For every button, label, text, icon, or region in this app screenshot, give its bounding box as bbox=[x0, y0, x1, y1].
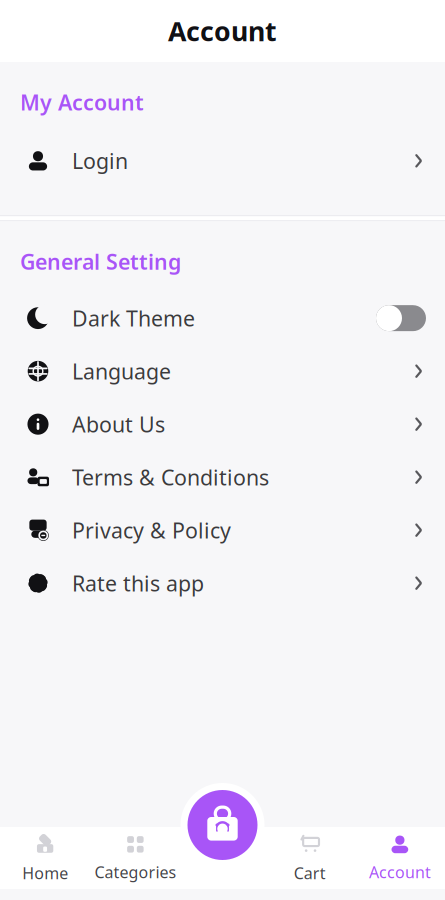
button[interactable]: Dark Theme bbox=[0, 292, 445, 345]
staticText: Account bbox=[369, 861, 431, 883]
staticText: Rate this app bbox=[72, 569, 204, 597]
button[interactable]: About Us bbox=[0, 398, 445, 451]
button[interactable]: Account bbox=[355, 827, 445, 889]
staticText: Terms & Conditions bbox=[72, 463, 269, 491]
staticText: Dark Theme bbox=[72, 304, 195, 332]
button[interactable]: Login bbox=[0, 134, 445, 187]
button[interactable]: Language bbox=[0, 345, 445, 398]
button[interactable]: Terms & Conditions bbox=[0, 451, 445, 504]
staticText: Login bbox=[72, 147, 128, 175]
staticText: Home bbox=[22, 862, 68, 884]
staticText: About Us bbox=[72, 410, 165, 438]
button[interactable]: Cart bbox=[264, 827, 355, 889]
button[interactable]: Categories bbox=[90, 827, 180, 889]
button[interactable]: Rate this app bbox=[0, 557, 445, 610]
staticText: General Setting bbox=[20, 247, 181, 276]
staticText: Categories bbox=[94, 861, 176, 883]
staticText: My Account bbox=[20, 88, 144, 116]
staticText: Language bbox=[72, 357, 171, 385]
button[interactable]: Privacy & Policy bbox=[0, 504, 445, 557]
staticText: Cart bbox=[294, 862, 326, 884]
staticText: Account bbox=[168, 13, 277, 49]
button[interactable]: Shop bbox=[180, 783, 264, 867]
button[interactable]: Home bbox=[0, 827, 90, 889]
staticText: Privacy & Policy bbox=[72, 516, 231, 544]
